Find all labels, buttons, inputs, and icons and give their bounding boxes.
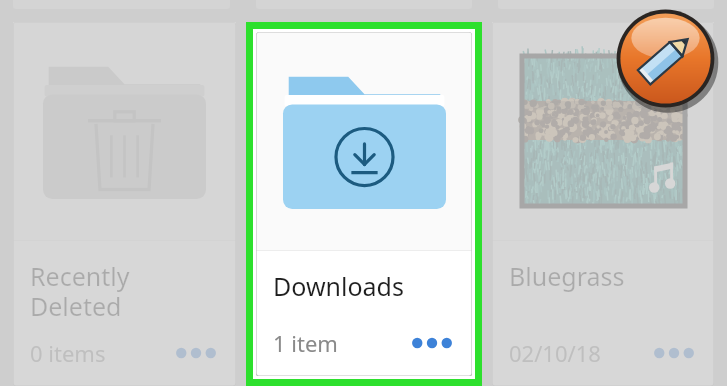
staticText: Downloads — [273, 269, 404, 303]
button[interactable]: More options — [173, 341, 219, 365]
button[interactable]: Downloads — [256, 32, 472, 376]
staticText: Recently Deleted — [30, 259, 130, 323]
button[interactable]: More options — [651, 341, 697, 365]
staticText: 02/10/18 — [509, 338, 601, 368]
staticText: 0 items — [30, 338, 106, 368]
staticText: 1 item — [273, 328, 338, 358]
button[interactable]: Edit — [609, 2, 722, 115]
button[interactable]: More options — [409, 331, 455, 355]
button[interactable]: Recently Deleted — [13, 22, 236, 386]
staticText: Bluegrass — [509, 259, 625, 293]
button[interactable]: Bluegrass — [492, 22, 714, 386]
